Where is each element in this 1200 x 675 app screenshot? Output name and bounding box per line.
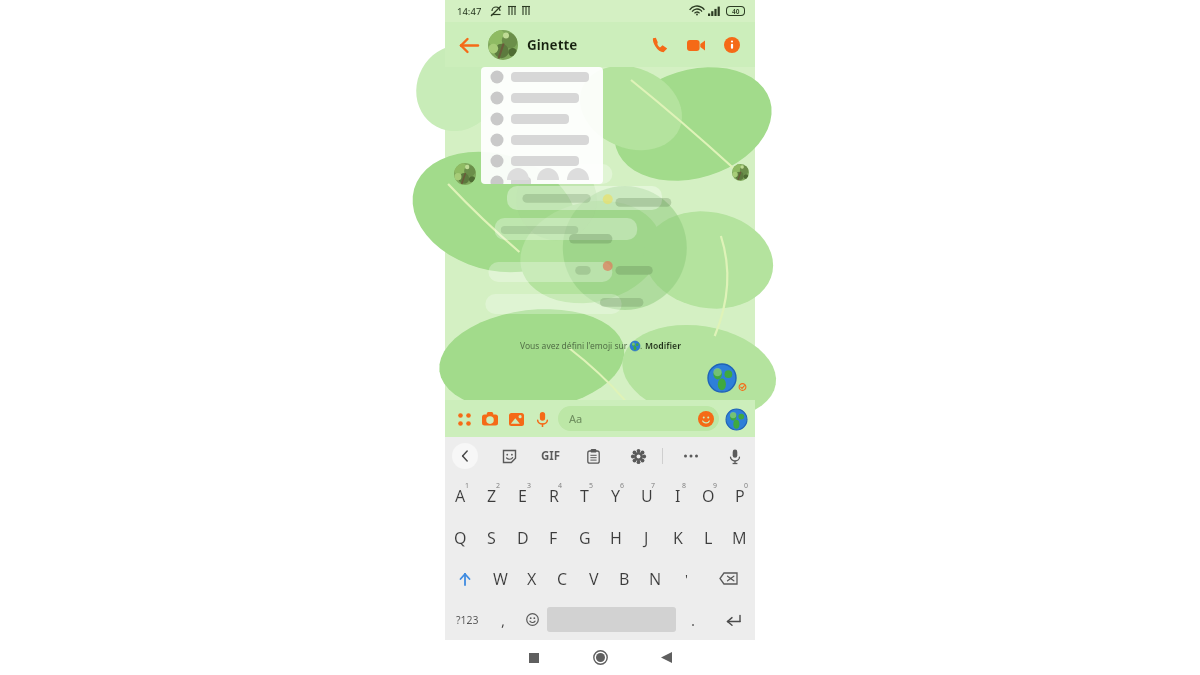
staticText: ?123	[456, 613, 479, 627]
button[interactable]: Back	[452, 443, 478, 469]
button[interactable]: Send sticker	[723, 406, 749, 432]
button[interactable]: H	[600, 517, 631, 558]
staticText: 6	[620, 481, 625, 491]
staticText: C	[557, 568, 568, 590]
staticText: Z	[487, 485, 497, 507]
button[interactable]: Z	[476, 475, 507, 517]
staticText: 7	[651, 481, 656, 491]
staticText: M	[732, 527, 747, 549]
button[interactable]: P	[724, 475, 755, 517]
staticText: V	[589, 568, 599, 590]
button[interactable]: Enter	[711, 599, 755, 640]
button[interactable]: Settings	[625, 443, 651, 469]
button[interactable]: Q	[445, 517, 476, 558]
staticText: X	[527, 568, 537, 590]
button[interactable]: Shift	[445, 558, 485, 599]
staticText: GIF	[541, 448, 561, 464]
button[interactable]: W	[485, 558, 516, 599]
button[interactable]: Back	[644, 640, 688, 675]
staticText: Y	[611, 485, 621, 507]
button[interactable]: More	[678, 443, 704, 469]
button[interactable]: Camera	[477, 406, 503, 432]
button[interactable]: Call	[645, 30, 675, 60]
staticText: 8	[682, 481, 687, 491]
staticText: Q	[454, 527, 467, 549]
staticText: Modifier	[645, 340, 681, 352]
staticText: K	[673, 527, 683, 549]
button[interactable]: I	[662, 475, 693, 517]
button[interactable]: R	[538, 475, 569, 517]
staticText: A	[455, 485, 466, 507]
button[interactable]: L	[693, 517, 724, 558]
staticText: P	[735, 485, 745, 507]
button[interactable]: B	[609, 558, 640, 599]
button[interactable]: GIF	[541, 448, 561, 464]
button[interactable]: ,	[489, 599, 518, 640]
button[interactable]: .	[676, 599, 711, 640]
button[interactable]: O	[693, 475, 724, 517]
staticText: 5	[589, 481, 594, 491]
button[interactable]: T	[569, 475, 600, 517]
button[interactable]: Voice input	[722, 443, 748, 469]
staticText: G	[579, 527, 591, 549]
button[interactable]: Clipboard	[580, 443, 606, 469]
staticText: 4	[558, 481, 563, 491]
staticText: .	[640, 340, 645, 352]
staticText: ,	[501, 610, 506, 630]
button[interactable]: Emoji	[698, 411, 714, 427]
button[interactable]: A	[445, 475, 476, 517]
button[interactable]: S	[476, 517, 507, 558]
staticText: O	[702, 485, 715, 507]
button[interactable]: Gallery	[503, 406, 529, 432]
staticText: 2	[496, 481, 501, 491]
staticText: T	[580, 485, 589, 507]
staticText: W	[493, 568, 508, 590]
button[interactable]: More options	[451, 406, 477, 432]
button[interactable]: U	[631, 475, 662, 517]
staticText: S	[487, 527, 496, 549]
button[interactable]: Home	[578, 640, 622, 675]
staticText: 40	[732, 7, 740, 15]
button[interactable]: Backspace	[702, 558, 755, 599]
button[interactable]: Y	[600, 475, 631, 517]
button[interactable]: Back	[453, 30, 483, 60]
staticText: B	[619, 568, 630, 590]
staticText: U	[641, 485, 653, 507]
button[interactable]: F	[538, 517, 569, 558]
button[interactable]: Stickers	[496, 443, 522, 469]
button[interactable]: Aa	[558, 406, 719, 431]
button[interactable]: G	[569, 517, 600, 558]
button[interactable]: ?123	[445, 599, 489, 640]
button[interactable]: Video call	[681, 30, 711, 60]
button[interactable]: E	[507, 475, 538, 517]
staticText: J	[644, 527, 649, 549]
staticText: '	[685, 570, 688, 588]
button[interactable]: '	[671, 558, 702, 599]
staticText: H	[610, 527, 622, 549]
staticText: I	[675, 485, 681, 507]
button[interactable]: Info	[717, 30, 747, 60]
button[interactable]: J	[631, 517, 662, 558]
staticText: E	[518, 485, 527, 507]
staticText: 0	[744, 481, 749, 491]
button[interactable]: Modifier	[645, 340, 681, 352]
staticText: 14:47	[457, 5, 482, 18]
button[interactable]: N	[640, 558, 671, 599]
button[interactable]: D	[507, 517, 538, 558]
staticText: N	[649, 568, 662, 590]
staticText: R	[549, 485, 559, 507]
staticText: Ginette	[527, 36, 645, 54]
button[interactable]: Recent apps	[512, 640, 556, 675]
button[interactable]: C	[547, 558, 578, 599]
button[interactable]: X	[516, 558, 547, 599]
button[interactable]: Voice message	[529, 406, 555, 432]
staticText: 1	[465, 481, 470, 491]
staticText: Aa	[569, 411, 583, 426]
button[interactable]: K	[662, 517, 693, 558]
button[interactable]: M	[724, 517, 755, 558]
staticText: L	[704, 527, 713, 549]
button[interactable]: Emoji	[518, 599, 547, 640]
button[interactable]: V	[578, 558, 609, 599]
staticText: D	[517, 527, 529, 549]
